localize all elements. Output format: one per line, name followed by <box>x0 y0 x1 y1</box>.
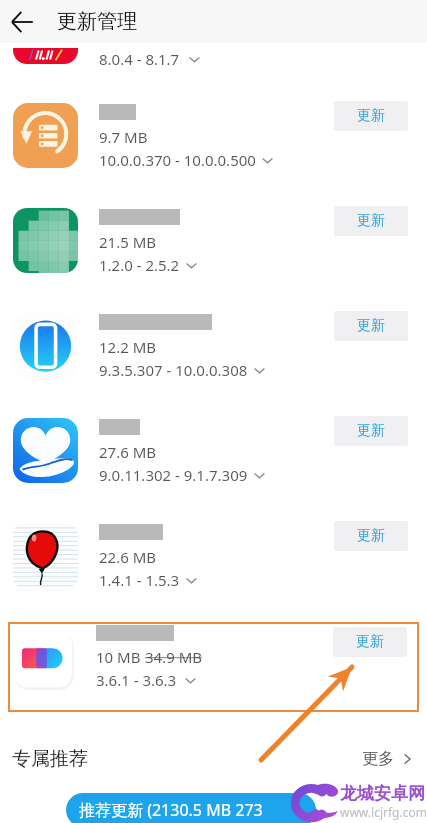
button[interactable]: Back <box>0 0 43 43</box>
staticText: 更新 <box>356 633 384 651</box>
staticText: 更新 <box>357 527 385 545</box>
staticText: 更新管理 <box>57 9 137 34</box>
button[interactable]: 27.6 MB <box>0 409 427 514</box>
staticText: www.lcjrfg.com <box>340 804 427 820</box>
staticText: 10.0.0.370 - 10.0.0.500 <box>99 150 256 170</box>
button[interactable]: 更新 <box>334 311 408 341</box>
button[interactable]: 9.7 MB <box>0 94 427 199</box>
staticText: 更新 <box>357 212 385 230</box>
staticText: 专属推荐 <box>12 747 88 771</box>
staticText: 21.5 MB <box>99 232 157 252</box>
staticText: 8.0.4 - 8.1.7 <box>99 49 180 69</box>
staticText: 更新 <box>357 107 385 125</box>
staticText: 9.7 MB <box>99 127 148 147</box>
staticText: 3.6.1 - 3.6.3 <box>96 670 177 690</box>
button[interactable]: 12.2 MB <box>0 304 427 409</box>
staticText: 1.4.1 - 1.5.3 <box>99 570 180 590</box>
button[interactable]: 21.5 MB <box>0 199 427 304</box>
button[interactable]: 专属推荐 <box>0 734 427 784</box>
staticText: 27.6 MB <box>99 442 157 462</box>
button[interactable]: 22.6 MB <box>0 514 427 619</box>
staticText: 12.2 MB <box>99 337 157 357</box>
staticText: 34.9 MB <box>145 647 203 667</box>
staticText: 更新 <box>357 317 385 335</box>
staticText: 推荐更新 (2130.5 MB 273 <box>79 799 263 821</box>
staticText: 更新 <box>357 422 385 440</box>
button[interactable]: 推荐更新 (2130.5 MB 273 <box>66 793 316 823</box>
button[interactable]: 10 MB <box>8 622 419 712</box>
button[interactable]: 更新 <box>334 416 408 446</box>
staticText: 更多 <box>362 749 394 769</box>
staticText: 龙城安卓网 <box>340 783 425 804</box>
staticText: 22.6 MB <box>99 547 157 567</box>
button[interactable]: 更新 <box>334 206 408 236</box>
staticText: 10 MB <box>96 647 145 667</box>
button[interactable]: 更新 <box>334 101 408 131</box>
button[interactable]: 更新 <box>334 521 408 551</box>
staticText: 9.3.5.307 - 10.0.0.308 <box>99 360 248 380</box>
button[interactable]: 更新 <box>333 627 407 657</box>
staticText: 1.2.0 - 2.5.2 <box>99 255 180 275</box>
staticText: 9.0.11.302 - 9.1.7.309 <box>99 465 248 485</box>
